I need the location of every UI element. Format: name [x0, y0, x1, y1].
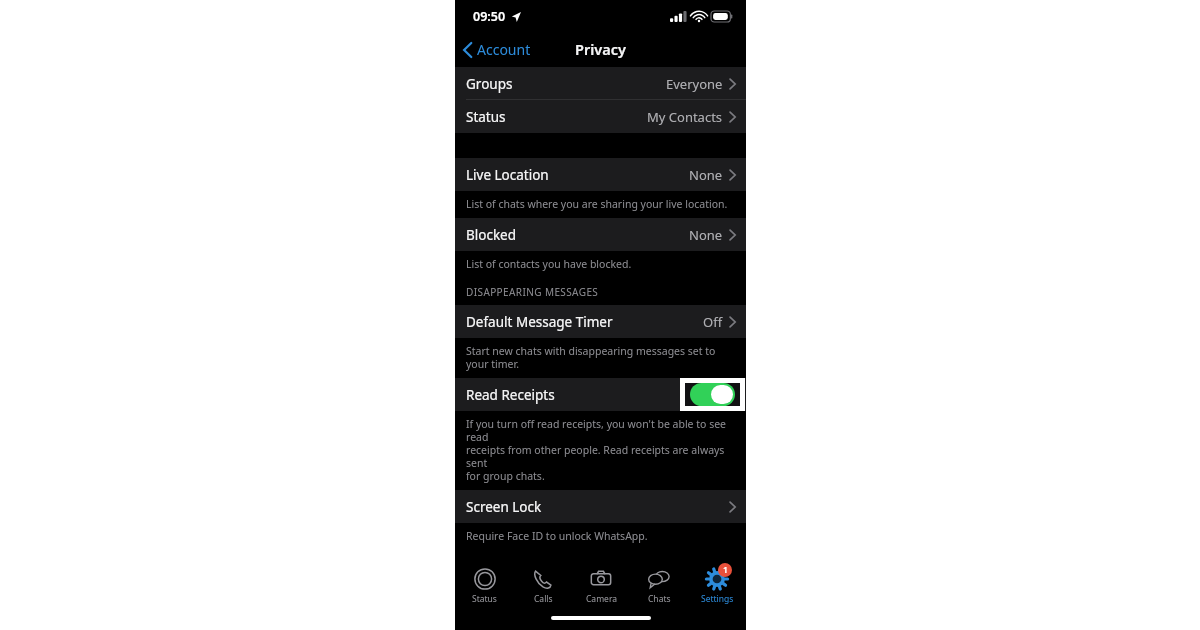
staticText: Screen Lock: [466, 498, 542, 516]
button[interactable]: Chats: [630, 563, 688, 611]
staticText: List of chats where you are sharing your…: [466, 197, 728, 211]
button[interactable]: Read Receipts: [455, 378, 746, 411]
staticText: Camera: [586, 593, 617, 605]
button[interactable]: Status: [455, 563, 514, 611]
staticText: Read Receipts: [466, 386, 555, 404]
button[interactable]: Account: [455, 36, 539, 63]
button[interactable]: Screen Lock: [455, 490, 746, 523]
button[interactable]: Calls: [514, 563, 572, 611]
staticText: Require Face ID to unlock WhatsApp.: [466, 529, 648, 543]
button[interactable]: Live Location: [455, 158, 746, 191]
button[interactable]: Groups: [455, 67, 746, 100]
staticText: None: [689, 166, 723, 184]
button[interactable]: Default Message Timer: [455, 305, 746, 338]
staticText: Off: [703, 313, 723, 331]
staticText: Settings: [701, 593, 734, 605]
staticText: Groups: [466, 75, 513, 93]
staticText: Account: [477, 40, 531, 59]
staticText: DISAPPEARING MESSAGES: [466, 285, 599, 299]
button[interactable]: Read Receipts toggle, on: [690, 383, 735, 406]
staticText: If you turn off read receipts, you won't…: [466, 417, 736, 483]
staticText: Live Location: [466, 166, 549, 184]
staticText: Start new chats with disappearing messag…: [466, 344, 716, 371]
staticText: Default Message Timer: [466, 313, 613, 331]
staticText: Blocked: [466, 226, 517, 244]
staticText: Status: [466, 108, 506, 126]
staticText: None: [689, 226, 723, 244]
staticText: 09:50: [473, 8, 506, 25]
staticText: 1: [723, 564, 728, 576]
button[interactable]: Camera: [572, 563, 630, 611]
staticText: Status: [472, 593, 497, 605]
staticText: My Contacts: [647, 108, 723, 126]
staticText: Everyone: [666, 75, 723, 93]
button[interactable]: Status: [455, 100, 746, 133]
staticText: List of contacts you have blocked.: [466, 257, 632, 271]
staticText: Chats: [648, 593, 671, 605]
button[interactable]: 1: [688, 563, 746, 611]
button[interactable]: Blocked: [455, 218, 746, 251]
staticText: Privacy: [575, 39, 626, 59]
staticText: Calls: [534, 593, 553, 605]
